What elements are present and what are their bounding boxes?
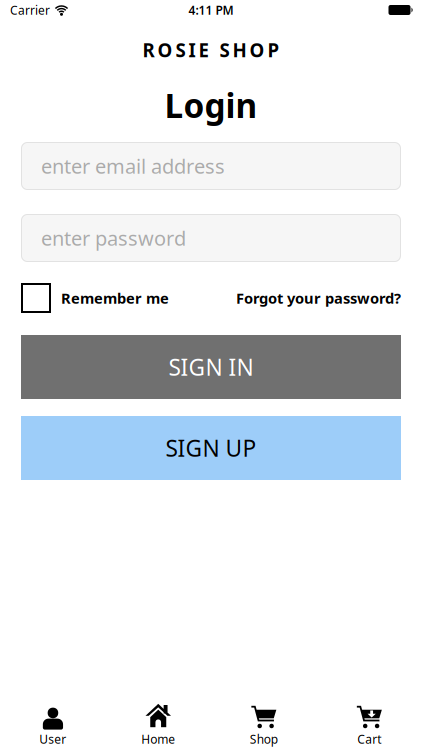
staticText: Shop [250,731,278,747]
staticText: Carrier [10,2,50,18]
staticText: Cart [357,731,381,747]
staticText: enter password [41,225,186,251]
button[interactable]: SIGN IN [0,335,422,399]
staticText: Remember me [61,288,169,308]
staticText: Forgot your password? [236,288,401,308]
staticText: SIGN UP [165,433,256,463]
staticText: Login [164,83,257,127]
button[interactable]: Shop [211,703,316,747]
button[interactable]: Remember me [21,283,169,313]
staticText: enter email address [41,153,225,179]
button[interactable]: Cart [316,703,422,747]
staticText: ROSIE SHOP [142,38,279,62]
staticText: SIGN IN [168,352,253,382]
staticText: 4:11 PM [188,2,233,18]
button[interactable]: User [0,703,105,747]
staticText: Home [141,731,175,747]
button[interactable]: SIGN UP [0,416,422,480]
button[interactable]: Forgot your password? [236,288,401,308]
button[interactable]: Home [105,703,211,747]
staticText: User [39,731,66,747]
button[interactable]: enter email address [0,142,422,190]
button[interactable]: enter password [0,214,422,262]
